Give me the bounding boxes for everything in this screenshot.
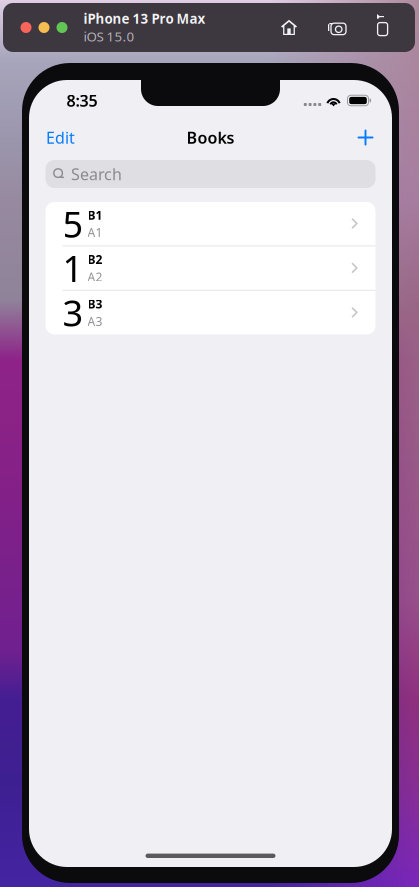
staticText: A1	[87, 224, 102, 240]
button[interactable]: Zoom	[56, 22, 67, 33]
staticText: B1	[87, 207, 102, 223]
staticText: 8:35	[66, 90, 97, 111]
staticText: Search	[71, 163, 122, 185]
button[interactable]: 5	[45, 202, 375, 246]
staticText: Books	[186, 127, 234, 148]
button[interactable]: Add book	[349, 121, 382, 154]
button[interactable]: Close	[20, 22, 31, 33]
button[interactable]: Rotate	[367, 12, 397, 42]
staticText: Edit	[46, 127, 75, 148]
staticText: B3	[87, 296, 102, 312]
staticText: 3	[62, 289, 83, 336]
staticText: A2	[87, 269, 102, 285]
button[interactable]: 3	[45, 291, 375, 334]
staticText: B2	[87, 251, 102, 267]
staticText: 5	[62, 200, 83, 248]
button[interactable]: 1	[45, 246, 375, 291]
staticText: iPhone 13 Pro Max	[83, 10, 205, 27]
button[interactable]: Home	[271, 12, 307, 42]
button[interactable]: Edit	[46, 121, 84, 154]
staticText: A3	[87, 313, 102, 329]
button[interactable]: Minimize	[38, 22, 49, 33]
staticText: 1	[62, 244, 83, 292]
staticText: iOS 15.0	[83, 27, 134, 45]
button[interactable]: Screenshot	[319, 12, 355, 42]
button[interactable]: Search	[45, 160, 375, 188]
